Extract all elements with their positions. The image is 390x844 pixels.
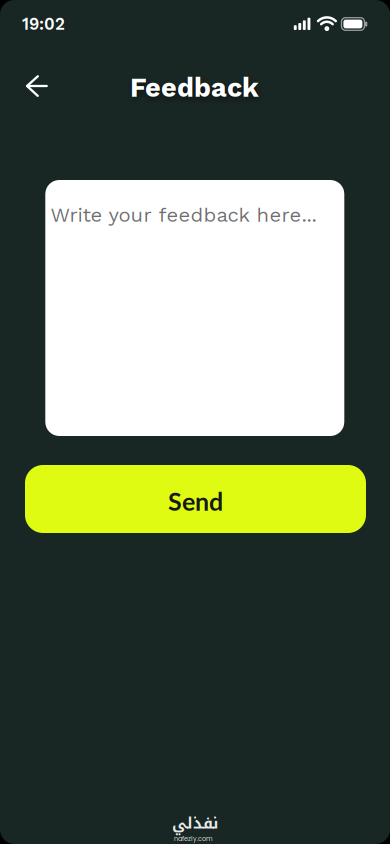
staticText: Feedback	[130, 72, 259, 103]
textField[interactable]: Write your feedback here...	[45, 180, 344, 436]
staticText: Send	[168, 486, 223, 516]
staticText: 19:02	[22, 14, 65, 34]
staticText: nafezly.com	[174, 834, 213, 843]
button[interactable]: Send	[25, 465, 366, 533]
button[interactable]: Back	[15, 64, 59, 108]
staticText: Write your feedback here...	[50, 203, 316, 227]
staticText: نفذلي	[171, 809, 217, 838]
